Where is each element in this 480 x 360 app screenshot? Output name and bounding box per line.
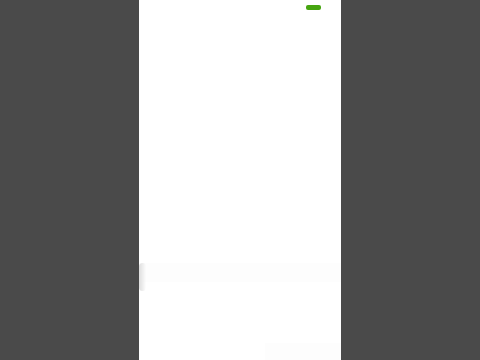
button[interactable]: Status indicator bbox=[306, 5, 321, 10]
button[interactable]: List item bbox=[139, 263, 341, 282]
